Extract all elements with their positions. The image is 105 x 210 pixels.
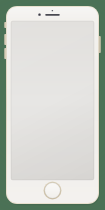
button[interactable]: Smartphone illustration — [0, 0, 105, 210]
